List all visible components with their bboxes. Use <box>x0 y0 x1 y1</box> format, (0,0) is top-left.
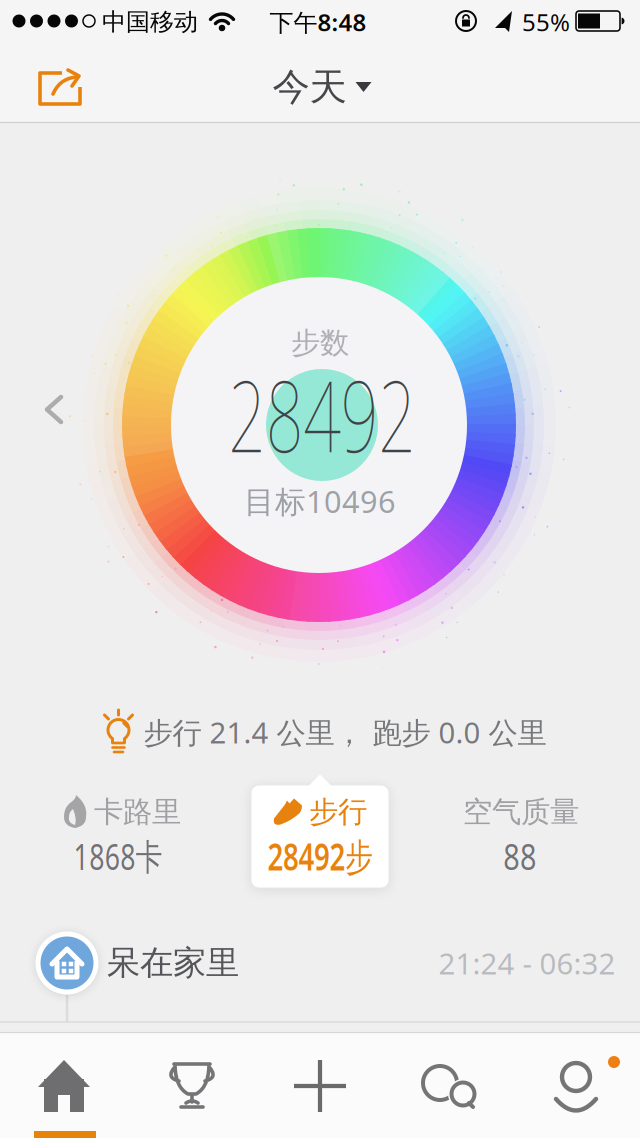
button[interactable]: 呆在家里 <box>0 923 640 1003</box>
button[interactable]: Share <box>30 60 90 116</box>
staticText: 步行 <box>309 794 367 830</box>
staticText: 55% <box>522 6 570 38</box>
staticText: 28492 <box>182 348 462 479</box>
button[interactable]: Messages <box>384 1036 512 1136</box>
button[interactable]: Add <box>256 1036 384 1136</box>
button[interactable]: Achievements <box>128 1035 256 1135</box>
staticText: 21:24 - 06:32 <box>438 943 615 982</box>
button[interactable]: 步行 <box>245 771 395 893</box>
staticText: 中国移动 <box>102 7 198 37</box>
staticText: 下午8:48 <box>269 6 366 38</box>
staticText: 88 <box>499 832 541 880</box>
staticText: 卡路里 <box>94 794 181 830</box>
staticText: 今天 <box>272 64 346 110</box>
staticText: 目标10496 <box>244 481 396 521</box>
button[interactable]: Home <box>0 1036 128 1136</box>
staticText: 空气质量 <box>463 794 579 830</box>
staticText: 步数 <box>291 325 349 361</box>
staticText: 28492步 <box>249 831 391 881</box>
staticText: 步行 21.4 公里， 跑步 0.0 公里 <box>143 712 546 751</box>
button[interactable]: Previous day <box>39 397 69 447</box>
staticText: 1868卡 <box>58 832 178 880</box>
button[interactable]: 今天 <box>272 64 371 110</box>
button[interactable]: Profile <box>512 1036 640 1136</box>
staticText: 呆在家里 <box>107 942 239 983</box>
